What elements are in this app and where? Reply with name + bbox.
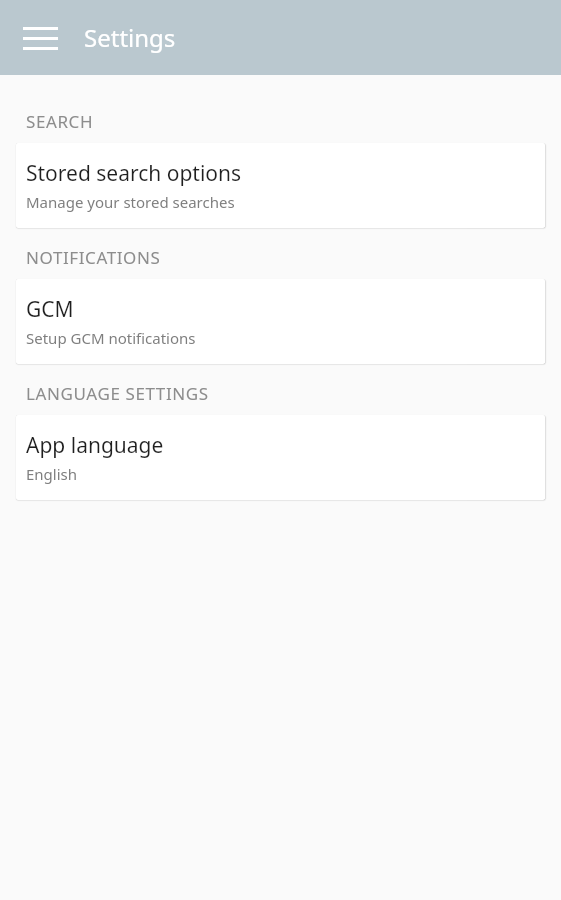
- staticText: Manage your stored searches: [26, 192, 235, 212]
- button[interactable]: App language: [16, 415, 545, 500]
- button[interactable]: Open navigation menu: [16, 14, 64, 62]
- staticText: App language: [26, 431, 164, 460]
- button[interactable]: Stored search options: [16, 143, 545, 228]
- staticText: Stored search options: [26, 159, 242, 188]
- staticText: SEARCH: [26, 110, 94, 133]
- staticText: LANGUAGE SETTINGS: [26, 382, 209, 405]
- staticText: Setup GCM notifications: [26, 328, 196, 348]
- staticText: NOTIFICATIONS: [26, 246, 161, 269]
- staticText: English: [26, 464, 78, 484]
- staticText: GCM: [26, 295, 74, 324]
- staticText: Settings: [84, 21, 176, 54]
- button[interactable]: GCM: [16, 279, 545, 364]
